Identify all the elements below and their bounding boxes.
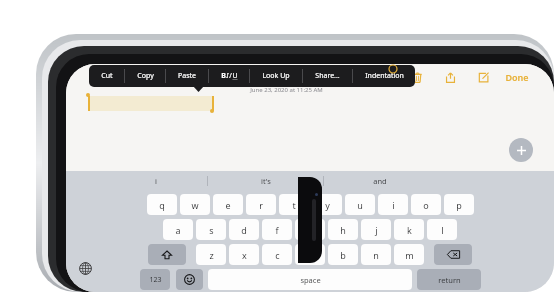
staticText: Done [505,71,529,83]
staticText: g [307,224,313,236]
button[interactable]: B [209,65,249,87]
button[interactable]: Share... [303,65,352,87]
staticText: o [423,199,429,211]
staticText: return [438,275,461,285]
button[interactable]: and [324,171,436,191]
staticText: Paste [178,71,196,81]
button[interactable]: Share [439,67,461,87]
button[interactable]: p [444,194,474,215]
staticText: h [340,224,346,236]
staticText: u [357,199,363,211]
button[interactable]: j [361,219,391,240]
staticText: U [232,71,238,81]
staticText: f [275,224,279,236]
button[interactable]: y [312,194,342,215]
button[interactable]: Done [502,67,532,87]
staticText: t [292,199,296,211]
button[interactable]: it's [208,171,323,191]
staticText: a [175,224,181,236]
button[interactable]: Add [509,138,533,162]
staticText: space [300,275,321,285]
staticText: d [241,224,247,236]
button[interactable]: Shift [148,244,186,265]
button[interactable]: a [163,219,193,240]
staticText: / [229,71,232,81]
staticText: p [456,199,462,211]
staticText: June 23, 2020 at 11:25 AM [250,86,323,94]
button[interactable]: Compose [472,67,494,87]
button[interactable]: v [295,244,325,265]
button[interactable]: q [147,194,177,215]
button[interactable]: Cut [89,65,124,87]
staticText: Cut [101,71,113,81]
button[interactable]: l [427,219,457,240]
staticText: Indentation [365,71,404,81]
staticText: I [226,71,229,81]
button[interactable]: 123 [140,269,170,290]
button[interactable]: k [394,219,424,240]
staticText: j [375,224,378,236]
staticText: b [340,249,346,261]
staticText: y [325,199,330,211]
staticText: r [259,199,263,211]
button[interactable]: h [328,219,358,240]
staticText: k [407,224,412,236]
button[interactable]: Switch keyboard language [75,258,95,278]
staticText: l [441,224,444,236]
button[interactable]: Look Up [250,65,302,87]
staticText: q [159,199,165,211]
button[interactable]: Delete [406,67,428,87]
button[interactable]: Paste [166,65,208,87]
staticText: and [373,176,387,186]
button[interactable]: b [328,244,358,265]
button[interactable]: return [417,269,481,290]
button[interactable]: Emoji [176,269,203,290]
staticText: i [155,176,157,186]
staticText: Share... [315,71,340,81]
staticText: c [275,249,280,261]
staticText: z [209,249,214,261]
button[interactable]: t [279,194,309,215]
button[interactable]: z [196,244,226,265]
staticText: e [225,199,231,211]
button[interactable]: r [246,194,276,215]
staticText: i [392,199,395,211]
button[interactable]: x [229,244,259,265]
button[interactable]: Indentation [353,65,415,87]
button[interactable]: o [411,194,441,215]
button[interactable]: e [213,194,243,215]
button[interactable]: c [262,244,292,265]
button[interactable]: w [180,194,210,215]
staticText: s [209,224,214,236]
button[interactable]: u [345,194,375,215]
staticText: B [221,71,226,81]
button[interactable]: s [196,219,226,240]
button[interactable]: f [262,219,292,240]
staticText: Look Up [262,71,290,81]
staticText: Hello world [91,203,171,218]
button[interactable]: Copy [125,65,165,87]
button[interactable]: i [378,194,408,215]
button[interactable]: space [208,269,412,290]
staticText: m [405,249,414,261]
button[interactable]: d [229,219,259,240]
staticText: n [373,249,379,261]
staticText: Copy [137,71,154,81]
button[interactable]: Backspace [434,244,472,265]
button[interactable]: m [394,244,424,265]
staticText: w [191,199,199,211]
button[interactable]: n [361,244,391,265]
staticText: x [242,249,247,261]
button[interactable]: g [295,219,325,240]
staticText: it's [261,176,271,186]
staticText: 123 [149,275,162,285]
